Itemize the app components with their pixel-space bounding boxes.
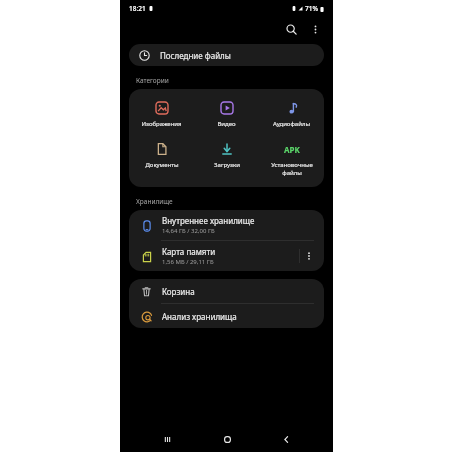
staticText: Изображения [141, 120, 182, 128]
staticText: Анализ хранилища [162, 311, 237, 322]
button[interactable]: Ещё [305, 19, 325, 39]
staticText: APK [284, 144, 300, 155]
button[interactable]: Видео [194, 97, 259, 130]
staticText: 1,56 МБ / 29,11 ГБ [162, 258, 214, 266]
button[interactable]: Документы [129, 138, 194, 171]
button[interactable]: Корзина [129, 279, 324, 303]
button[interactable]: Параметры карты памяти [300, 247, 318, 265]
button[interactable]: Аудиофайлы [259, 97, 324, 130]
staticText: Последние файлы [160, 50, 231, 61]
staticText: Видео [217, 120, 236, 128]
button[interactable]: Изображения [129, 97, 194, 130]
button[interactable]: Карта памяти [129, 241, 324, 271]
staticText: 18:21 [129, 4, 146, 13]
button[interactable]: Анализ хранилища [129, 304, 324, 328]
button[interactable]: Поиск [281, 19, 301, 39]
staticText: Установочные файлы [271, 161, 313, 177]
staticText: Корзина [162, 286, 195, 297]
staticText: Категории [136, 76, 169, 85]
staticText: Карта памяти [162, 246, 216, 257]
staticText: Внутреннее хранилище [162, 215, 255, 226]
button[interactable]: Последние приложения [154, 426, 180, 452]
staticText: 71% [305, 4, 318, 13]
button[interactable]: Внутреннее хранилище [129, 210, 324, 240]
staticText: Хранилище [136, 197, 173, 206]
staticText: Загрузки [214, 161, 240, 169]
button[interactable]: Загрузки [194, 138, 259, 171]
staticText: Аудиофайлы [273, 120, 310, 128]
staticText: 14,64 ГБ / 32,00 ГБ [162, 227, 215, 235]
staticText: Документы [145, 161, 179, 169]
button[interactable]: Главный экран [214, 426, 240, 452]
button[interactable]: Назад [273, 426, 299, 452]
button[interactable]: APK [259, 138, 324, 179]
button[interactable]: Последние файлы [129, 44, 324, 66]
